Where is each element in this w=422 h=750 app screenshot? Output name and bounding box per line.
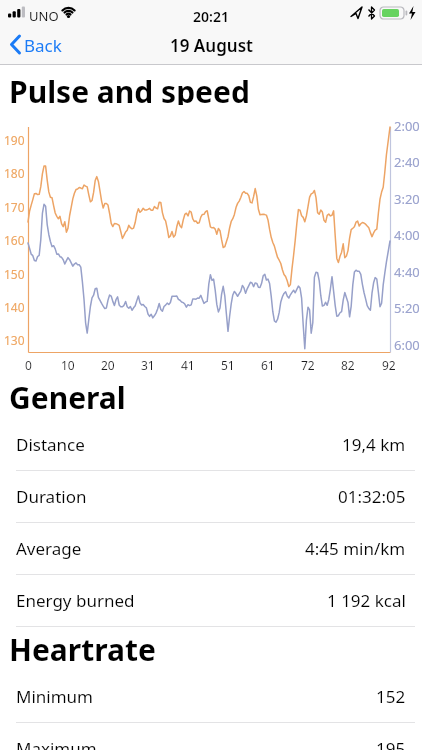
button[interactable]: Maximum (0, 722, 422, 750)
staticText: Energy burned (16, 589, 135, 612)
staticText: 1 192 kcal (327, 589, 406, 612)
staticText: 4:00 (394, 226, 420, 242)
staticText: Back (24, 34, 62, 57)
staticText: 20 (101, 357, 115, 373)
staticText: 170 (4, 199, 25, 215)
staticText: 190 (4, 132, 25, 148)
staticText: 10 (61, 357, 75, 373)
staticText: 5:20 (394, 299, 420, 315)
staticText: Maximum (16, 737, 97, 750)
staticText: 3:20 (394, 190, 420, 206)
button[interactable]: Minimum (0, 670, 422, 722)
staticText: 4:45 min/km (305, 537, 406, 560)
staticText: 130 (4, 332, 25, 348)
staticText: 150 (4, 266, 25, 282)
staticText: 19,4 km (342, 433, 406, 456)
staticText: 160 (4, 232, 25, 248)
staticText: 41 (181, 357, 195, 373)
staticText: 51 (221, 357, 235, 373)
staticText: 180 (4, 165, 25, 181)
staticText: 195 (376, 737, 406, 750)
staticText: 140 (4, 299, 25, 315)
staticText: 152 (376, 685, 406, 708)
button[interactable]: Duration (0, 470, 422, 522)
staticText: Heartrate (9, 629, 156, 663)
staticText: 01:32:05 (338, 485, 406, 508)
staticText: Minimum (16, 685, 93, 708)
staticText: 2:00 (394, 117, 420, 133)
staticText: 31 (141, 357, 155, 373)
staticText: UNO (29, 7, 59, 25)
button[interactable]: Back (8, 30, 68, 60)
staticText: 6:00 (394, 336, 420, 352)
button[interactable]: Energy burned (0, 574, 422, 626)
staticText: Duration (16, 485, 87, 508)
staticText: 92 (382, 357, 396, 373)
staticText: 72 (301, 357, 315, 373)
staticText: 19 August (170, 34, 253, 57)
button[interactable]: Average (0, 522, 422, 574)
staticText: 61 (261, 357, 275, 373)
staticText: 82 (341, 357, 355, 373)
staticText: General (9, 377, 126, 411)
staticText: Average (16, 537, 82, 560)
staticText: 2:40 (394, 153, 420, 169)
staticText: 4:40 (394, 263, 420, 279)
staticText: Pulse and speed (9, 71, 250, 105)
staticText: 20:21 (193, 7, 229, 26)
button[interactable]: Distance (0, 418, 422, 470)
staticText: 0 (25, 357, 32, 373)
staticText: Distance (16, 433, 85, 456)
